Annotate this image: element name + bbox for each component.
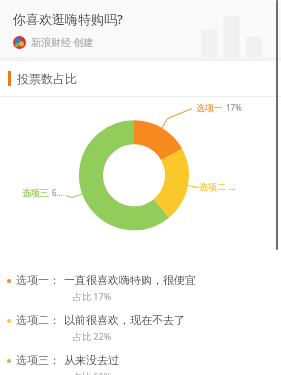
staticText: 6…	[52, 187, 63, 198]
staticText: 从来没去过	[64, 353, 119, 367]
staticText: 占比 22%	[73, 330, 112, 342]
button[interactable]: 选项二：	[0, 313, 281, 342]
staticText: 选项三：	[16, 353, 60, 367]
staticText: 选项二：	[16, 313, 60, 327]
button[interactable]: 你喜欢逛嗨特购吗?	[0, 0, 281, 57]
staticText: 投票数占比	[17, 71, 77, 86]
staticText: 占比 61%	[73, 370, 112, 375]
staticText: 占比 17%	[73, 290, 112, 302]
staticText: 选项三	[22, 187, 49, 198]
staticText: 新浪财经 创建	[31, 35, 94, 49]
staticText: 选项一：	[16, 273, 60, 287]
staticText: 17%	[226, 102, 242, 113]
button[interactable]: 选项一：	[0, 273, 281, 302]
button[interactable]: 选项三：	[0, 353, 281, 375]
staticText: 以前很喜欢，现在不去了	[64, 313, 185, 327]
staticText: …	[229, 181, 236, 192]
staticText: 选项二	[199, 181, 226, 192]
staticText: 一直很喜欢嗨特购，很便宜	[64, 273, 196, 287]
staticText: 你喜欢逛嗨特购吗?	[13, 10, 123, 28]
staticText: 选项一	[196, 102, 223, 113]
other: Scrollbar	[276, 0, 278, 250]
